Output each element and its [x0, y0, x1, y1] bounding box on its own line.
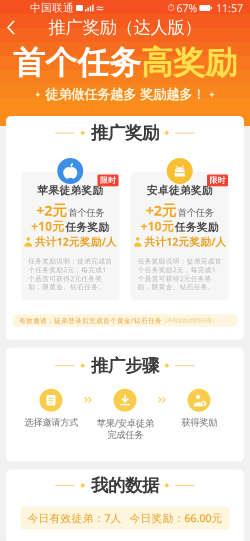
staticText: 安卓徒弟奖励	[147, 184, 213, 197]
staticText: 徒弟做任务越多 奖励越多！	[45, 86, 205, 103]
staticText: ✦	[163, 128, 171, 138]
staticText: +2元	[36, 200, 67, 220]
staticText: 获得奖励	[181, 417, 217, 428]
staticText: 限时	[100, 175, 116, 185]
staticText: 限时	[209, 175, 225, 185]
staticText: 有效邀请：徒弟登录后完成首个黄金/钻石任务	[19, 316, 162, 325]
staticText: +10元	[141, 218, 174, 234]
staticText: 我的数据	[91, 475, 159, 496]
staticText: 任务奖励说明：徒弟完成首个任务奖励2元，每完成1个悬赏可获得2元任务奖励，限黄金…	[28, 257, 112, 291]
staticText: ✦	[34, 89, 42, 100]
staticText: 任务奖励说明：徒弟完成首个任务奖励2元，每完成1个悬赏可获得2元任务奖励，限黄金…	[138, 257, 222, 291]
staticText: 推广奖励（达人版）	[48, 17, 201, 38]
staticText: ✦	[163, 360, 171, 371]
staticText: 苹果/安卓徒弟 完成任务	[96, 417, 153, 441]
staticText: ✦	[79, 360, 87, 371]
staticText: ✦	[79, 480, 87, 491]
staticText: ✦	[163, 480, 171, 491]
staticText: 推广步骤	[91, 355, 159, 376]
staticText: ✦	[208, 89, 216, 100]
staticText: ¥	[202, 400, 205, 407]
staticText: 首个任务	[68, 207, 104, 218]
staticText: 首个任务	[13, 43, 141, 82]
staticText: 推广奖励	[91, 122, 159, 144]
staticText: 任务奖励	[175, 221, 219, 234]
staticText: ⏱	[167, 3, 174, 12]
staticText: 共计12元奖励/人	[35, 234, 117, 249]
staticText: +10元	[31, 218, 64, 234]
staticText: 首个任务	[178, 207, 214, 218]
staticText: 共计12元奖励/人	[144, 234, 226, 249]
staticText: 高奖励	[141, 43, 237, 82]
staticText: 选择邀请方式	[24, 417, 78, 428]
staticText: 任务奖励	[65, 221, 109, 234]
staticText: 今日奖励：66.00元	[129, 511, 222, 525]
staticText: ≈	[96, 2, 105, 14]
staticText: +2元	[146, 200, 177, 220]
staticText: 今日有效徒弟：7人	[27, 511, 121, 525]
staticText: 中国联通	[30, 1, 74, 14]
button[interactable]: 返回	[0, 16, 26, 39]
staticText: 67%	[176, 1, 197, 15]
staticText: （不包括首次签到任务）	[162, 317, 217, 324]
staticText: ✦	[79, 128, 87, 138]
staticText: 苹果徒弟奖励	[37, 184, 103, 197]
staticText: 11:57	[216, 1, 243, 15]
